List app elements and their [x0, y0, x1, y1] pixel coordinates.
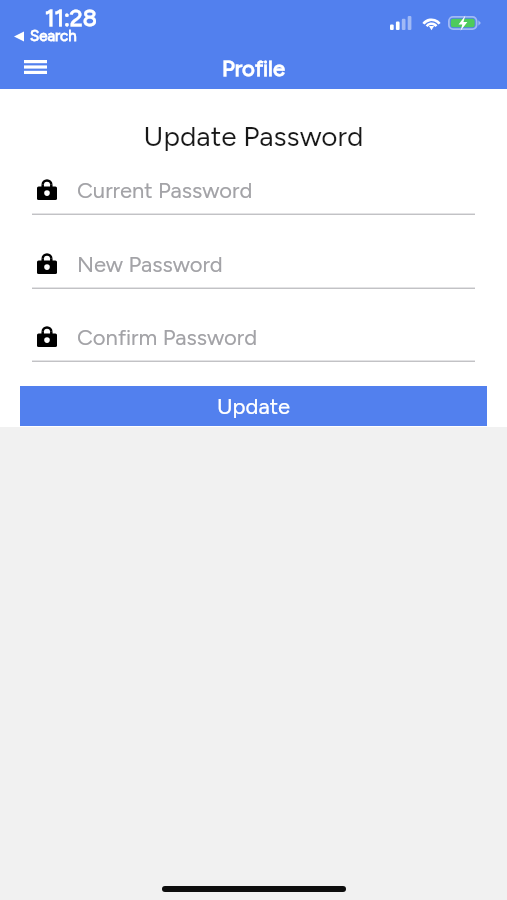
button[interactable]: Menu	[11, 45, 59, 89]
button[interactable]: New Password	[32, 240, 475, 289]
staticText: Profile	[0, 55, 507, 81]
staticText: Update	[217, 393, 290, 419]
staticText: 11:28	[45, 4, 97, 32]
staticText: Current Password	[77, 177, 253, 203]
button[interactable]: Update	[20, 386, 487, 426]
staticText: Update Password	[0, 119, 507, 153]
staticText: Search	[30, 27, 77, 45]
button[interactable]: Search	[14, 27, 77, 45]
staticText: Confirm Password	[77, 324, 258, 350]
button[interactable]: Confirm Password	[32, 313, 475, 362]
staticText: New Password	[77, 251, 223, 277]
button[interactable]: Current Password	[32, 166, 475, 215]
